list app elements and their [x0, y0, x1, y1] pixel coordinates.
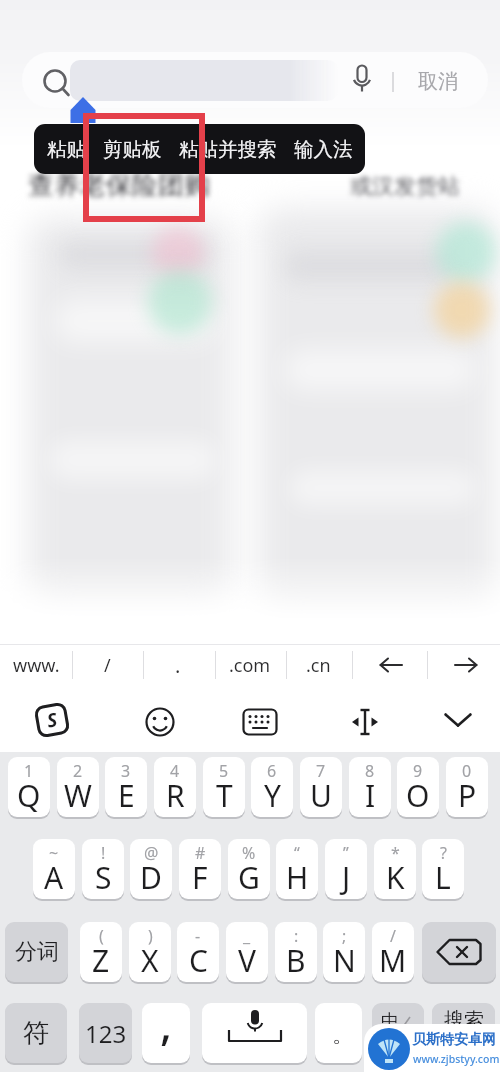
button[interactable]	[22, 52, 488, 108]
staticText: I	[365, 775, 376, 816]
button[interactable]: 2	[57, 757, 99, 817]
staticText: ~	[49, 842, 59, 864]
button[interactable]: 取消	[408, 68, 468, 94]
staticText: U	[310, 775, 332, 816]
button[interactable]	[364, 1024, 500, 1072]
button[interactable]: *	[374, 839, 416, 899]
button[interactable]	[451, 656, 481, 674]
staticText: N	[333, 940, 356, 981]
staticText: D	[140, 857, 162, 898]
staticText: 0	[462, 760, 472, 782]
staticText: @	[144, 842, 159, 864]
staticText: !	[101, 842, 106, 864]
staticText: #	[195, 842, 206, 864]
staticText: T	[216, 775, 233, 816]
staticText: V	[238, 940, 256, 981]
staticText: M	[379, 940, 407, 981]
button[interactable]: 4	[154, 757, 196, 817]
button[interactable]: “	[276, 839, 318, 899]
staticText: ;	[342, 925, 347, 947]
button[interactable]: 1	[8, 757, 50, 817]
button[interactable]: 3	[105, 757, 147, 817]
button[interactable]	[422, 922, 496, 982]
staticText: 7	[316, 760, 326, 782]
button[interactable]: 输入法	[294, 137, 353, 162]
button[interactable]	[443, 712, 473, 729]
button[interactable]: (	[80, 922, 122, 982]
button[interactable]: 7	[300, 757, 342, 817]
staticText: )	[148, 925, 153, 947]
button[interactable]: 搜索	[432, 1003, 495, 1063]
staticText: C	[189, 940, 208, 981]
button[interactable]	[242, 708, 278, 736]
staticText: S	[45, 706, 60, 734]
button[interactable]: _	[226, 922, 268, 982]
staticText: O	[406, 775, 430, 816]
staticText: www.	[13, 653, 60, 678]
staticText: .cn	[306, 653, 331, 678]
staticText: K	[386, 857, 405, 898]
staticText: 分词	[15, 938, 59, 966]
button[interactable]: S	[33, 701, 71, 739]
staticText: B	[286, 940, 306, 981]
staticText: 贝斯特安卓网	[412, 1031, 496, 1049]
staticText: 123	[85, 1017, 127, 1050]
staticText: F	[192, 857, 208, 898]
button[interactable]: 符	[5, 1003, 67, 1063]
staticText: :	[294, 925, 299, 947]
button[interactable]: ”	[325, 839, 367, 899]
staticText: 8	[365, 760, 375, 782]
button[interactable]: -	[177, 922, 219, 982]
staticText: 或汉发货站	[350, 173, 460, 201]
button[interactable]: 9	[397, 757, 439, 817]
staticText: 英	[404, 1041, 417, 1057]
button[interactable]	[376, 656, 406, 674]
button[interactable]: .com	[222, 652, 278, 678]
button[interactable]: /	[372, 922, 414, 982]
button[interactable]: 中	[372, 1003, 424, 1063]
button[interactable]: 123	[79, 1003, 132, 1063]
button[interactable]: ;	[323, 922, 365, 982]
button[interactable]: /	[80, 652, 134, 678]
staticText: 搜索	[444, 1008, 484, 1033]
button[interactable]: 剪贴板	[103, 137, 162, 162]
button[interactable]: 8	[349, 757, 391, 817]
button[interactable]: @	[130, 839, 172, 899]
button[interactable]	[348, 707, 382, 737]
staticText: 3	[121, 760, 131, 782]
button[interactable]: #	[179, 839, 221, 899]
staticText: 2	[73, 760, 83, 782]
button[interactable]: 。	[315, 1003, 362, 1063]
button[interactable]: 分词	[5, 922, 68, 982]
staticText: 5	[219, 760, 229, 782]
staticText: /	[104, 653, 111, 678]
button[interactable]: 0	[446, 757, 488, 817]
button[interactable]: 粘贴并搜索	[179, 137, 277, 162]
staticText: 1	[24, 760, 34, 782]
button[interactable]	[144, 706, 176, 738]
button[interactable]: !	[82, 839, 124, 899]
button[interactable]: ~	[33, 839, 75, 899]
button[interactable]: .cn	[292, 652, 344, 678]
staticText: Q	[17, 775, 41, 816]
staticText: 查养老保险团购	[28, 169, 210, 202]
button[interactable]	[202, 1003, 307, 1063]
button[interactable]: 6	[251, 757, 293, 817]
staticText: J	[342, 857, 351, 898]
button[interactable]: %	[228, 839, 270, 899]
button[interactable]: www.	[8, 652, 64, 678]
staticText: E	[118, 775, 135, 816]
button[interactable]: .	[151, 652, 205, 678]
staticText: 中	[381, 1010, 399, 1033]
button[interactable]: ,	[142, 1003, 190, 1063]
staticText: ,	[160, 1003, 173, 1053]
staticText: 9	[413, 760, 423, 782]
staticText: /	[390, 925, 396, 947]
button[interactable]: ?	[422, 839, 464, 899]
button[interactable]: 5	[203, 757, 245, 817]
staticText: -	[195, 925, 201, 947]
button[interactable]: 粘贴	[47, 137, 86, 162]
staticText: P	[458, 775, 477, 816]
button[interactable]: :	[275, 922, 317, 982]
button[interactable]: )	[129, 922, 171, 982]
